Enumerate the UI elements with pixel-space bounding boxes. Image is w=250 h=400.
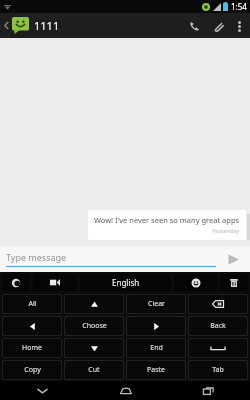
staticText: Type message: [6, 251, 67, 263]
button[interactable]: More options: [230, 14, 248, 38]
button[interactable]: Right: [126, 316, 186, 336]
button[interactable]: Emoji: [174, 274, 217, 291]
button[interactable]: 1111: [0, 17, 60, 34]
staticText: End: [150, 343, 163, 353]
button[interactable]: All: [2, 294, 62, 314]
button[interactable]: Paste: [126, 360, 186, 380]
button[interactable]: Settings: [220, 274, 248, 291]
staticText: All: [28, 299, 37, 309]
staticText: Home: [22, 343, 42, 353]
button[interactable]: Attach: [206, 14, 230, 38]
button[interactable]: Clear: [126, 294, 186, 314]
button[interactable]: Type message: [6, 251, 216, 267]
button[interactable]: Copy: [2, 360, 62, 380]
button[interactable]: Call: [182, 14, 206, 38]
button[interactable]: End: [126, 338, 186, 358]
staticText: Back: [210, 321, 226, 331]
staticText: English: [112, 277, 140, 288]
button[interactable]: Keyboard: [33, 274, 77, 291]
button[interactable]: Cut: [64, 360, 124, 380]
staticText: Paste: [147, 365, 165, 375]
button[interactable]: Home: [84, 381, 167, 400]
staticText: Tab: [212, 365, 224, 375]
button[interactable]: Wow! I've never seen so many great apps: [88, 210, 246, 240]
button[interactable]: Space: [188, 338, 248, 358]
button[interactable]: Home: [2, 338, 62, 358]
button[interactable]: Delete: [188, 294, 248, 314]
button[interactable]: Left: [2, 316, 62, 336]
button[interactable]: Recent apps: [167, 381, 250, 400]
staticText: Yesterday: [212, 227, 240, 235]
button[interactable]: Choose: [64, 316, 124, 336]
button[interactable]: Back: [0, 381, 84, 400]
button[interactable]: Up: [64, 294, 124, 314]
staticText: Choose: [82, 321, 107, 331]
button[interactable]: Tab: [188, 360, 248, 380]
button[interactable]: English: [80, 274, 171, 291]
staticText: Cut: [88, 365, 100, 375]
staticText: 1:54: [231, 1, 247, 12]
staticText: 1111: [34, 18, 60, 33]
button[interactable]: Back: [188, 316, 248, 336]
staticText: Wow! I've never seen so many great apps: [94, 215, 240, 225]
button[interactable]: Down: [64, 338, 124, 358]
staticText: Clear: [148, 299, 165, 309]
button[interactable]: Send: [222, 248, 244, 270]
button[interactable]: Input method: [2, 274, 30, 291]
staticText: Copy: [24, 365, 41, 375]
